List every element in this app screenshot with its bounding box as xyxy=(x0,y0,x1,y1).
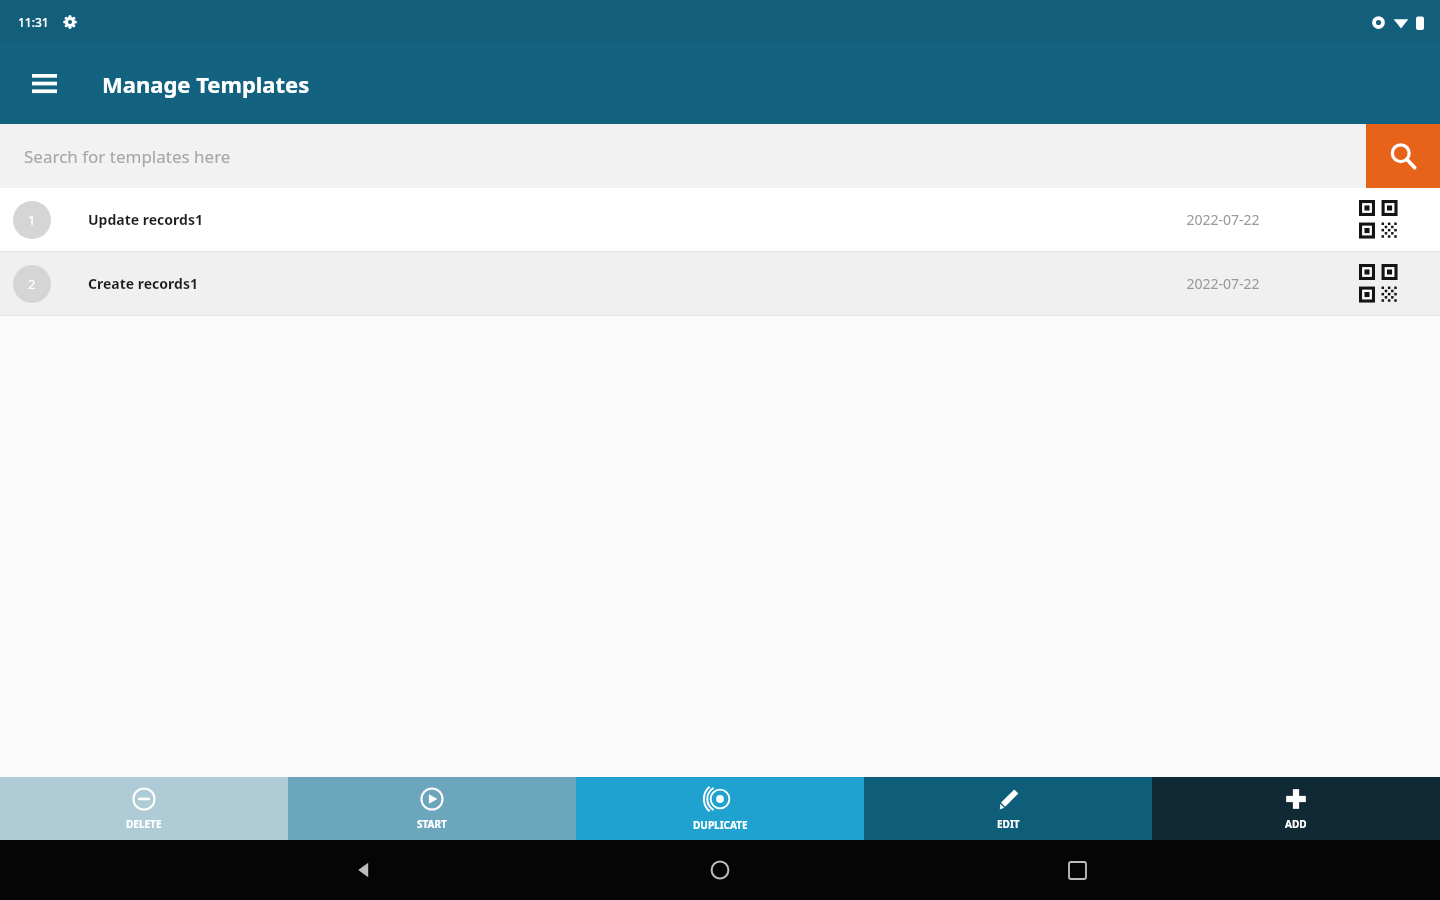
button[interactable]: QR code xyxy=(1318,252,1440,315)
staticText: DUPLICATE xyxy=(693,818,748,832)
staticText: EDIT xyxy=(997,817,1020,831)
button[interactable]: Recent apps xyxy=(1054,847,1100,893)
button[interactable]: ADD xyxy=(1152,777,1440,840)
staticText: Create records1 xyxy=(88,274,1128,293)
button[interactable]: Menu xyxy=(22,62,66,106)
button[interactable]: START xyxy=(288,777,576,840)
button[interactable]: EDIT xyxy=(864,777,1152,840)
button[interactable]: 1 xyxy=(0,188,1440,251)
staticText: 1 xyxy=(28,211,36,229)
staticText: ADD xyxy=(1285,817,1307,831)
button[interactable]: Back xyxy=(340,847,386,893)
staticText: Manage Templates xyxy=(102,69,310,99)
staticText: 2022-07-22 xyxy=(1128,210,1318,229)
button[interactable]: DUPLICATE xyxy=(576,777,864,840)
staticText: 11:31 xyxy=(18,14,49,30)
button[interactable]: Search xyxy=(1366,124,1440,188)
button[interactable]: 2 xyxy=(0,252,1440,315)
button[interactable]: DELETE xyxy=(0,777,288,840)
staticText: 2 xyxy=(28,275,36,293)
staticText: DELETE xyxy=(126,817,162,831)
button[interactable]: QR code xyxy=(1318,188,1440,251)
staticText: START xyxy=(417,817,447,831)
button[interactable]: Search for templates here xyxy=(0,124,1366,188)
button[interactable]: Home xyxy=(697,847,743,893)
staticText: Search for templates here xyxy=(24,145,231,168)
staticText: Update records1 xyxy=(88,210,1128,229)
staticText: 2022-07-22 xyxy=(1128,274,1318,293)
